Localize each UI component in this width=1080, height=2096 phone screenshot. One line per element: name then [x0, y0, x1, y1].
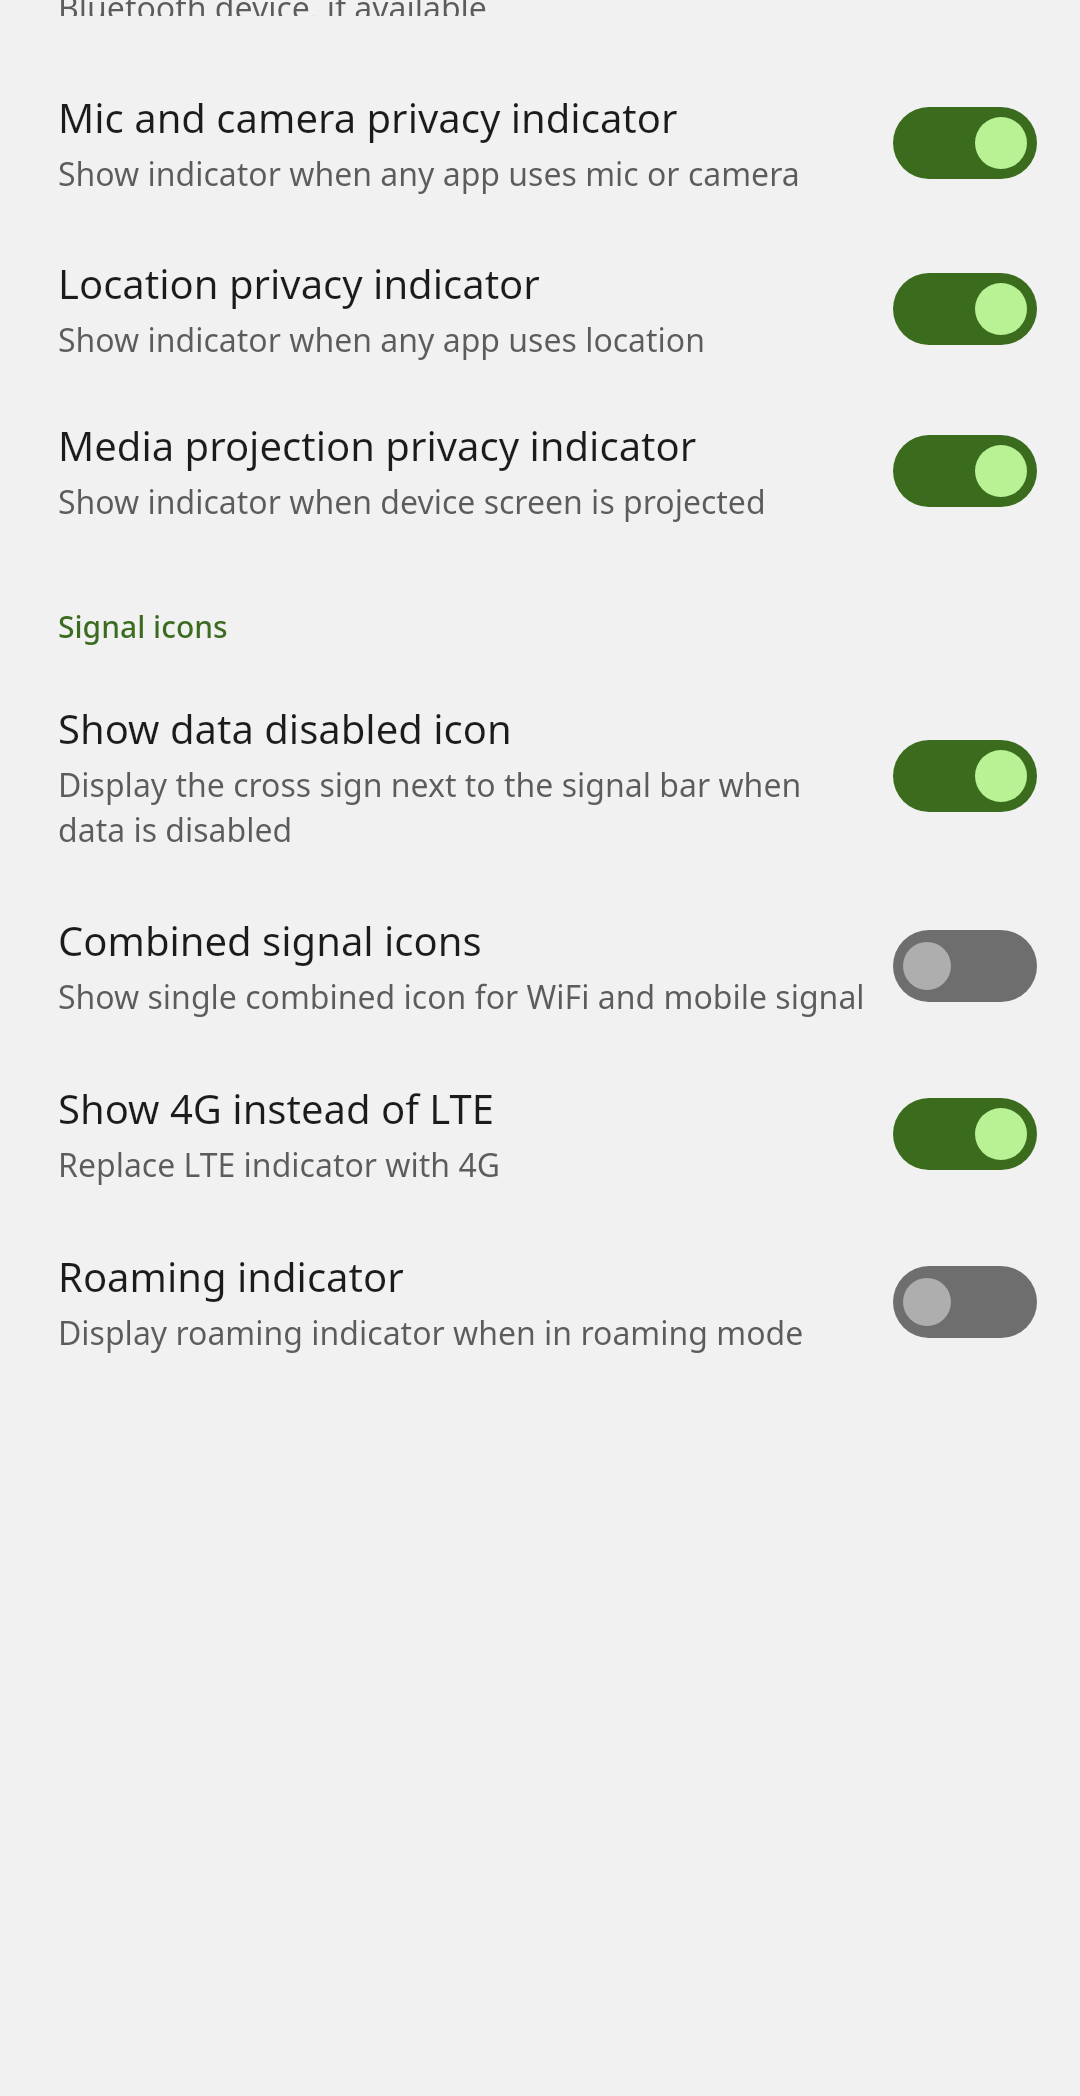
button[interactable]: Show 4G instead of LTE — [0, 1045, 1080, 1213]
staticText: Combined signal icons — [58, 913, 482, 967]
staticText: Display the cross sign next to the signa… — [58, 763, 873, 851]
button[interactable]: Roaming indicator — [0, 1213, 1080, 1385]
staticText: Signal icons — [58, 606, 228, 647]
button[interactable]: Mic and camera privacy indicator — [893, 91, 1037, 195]
staticText: Display roaming indicator when in roamin… — [58, 1311, 804, 1355]
button[interactable]: Show data disabled icon — [893, 724, 1037, 828]
button[interactable]: Location privacy indicator — [0, 230, 1080, 392]
staticText: Mic and camera privacy indicator — [58, 90, 678, 144]
button[interactable]: Mic and camera privacy indicator — [0, 30, 1080, 230]
staticText: Show single combined icon for WiFi and m… — [58, 975, 865, 1019]
staticText: Show indicator when any app uses mic or … — [58, 152, 800, 196]
staticText: Roaming indicator — [58, 1249, 404, 1303]
staticText: Show data disabled icon — [58, 701, 512, 755]
staticText: Show 4G instead of LTE — [58, 1081, 494, 1135]
button[interactable]: Location privacy indicator — [893, 257, 1037, 361]
button[interactable]: Combined signal icons — [893, 914, 1037, 1018]
button[interactable]: Combined signal icons — [0, 877, 1080, 1045]
staticText: Bluetooth device, if available — [58, 0, 487, 16]
button[interactable]: Media projection privacy indicator — [0, 392, 1080, 544]
staticText: Replace LTE indicator with 4G — [58, 1143, 500, 1187]
button[interactable]: Media projection privacy indicator — [893, 419, 1037, 523]
staticText: Media projection privacy indicator — [58, 418, 697, 472]
button[interactable]: Show data disabled icon — [0, 657, 1080, 877]
staticText: Show indicator when any app uses locatio… — [58, 318, 706, 362]
staticText: Show indicator when device screen is pro… — [58, 480, 766, 524]
button[interactable]: Roaming indicator — [893, 1250, 1037, 1354]
staticText: Location privacy indicator — [58, 256, 540, 310]
button[interactable]: Show 4G instead of LTE — [893, 1082, 1037, 1186]
